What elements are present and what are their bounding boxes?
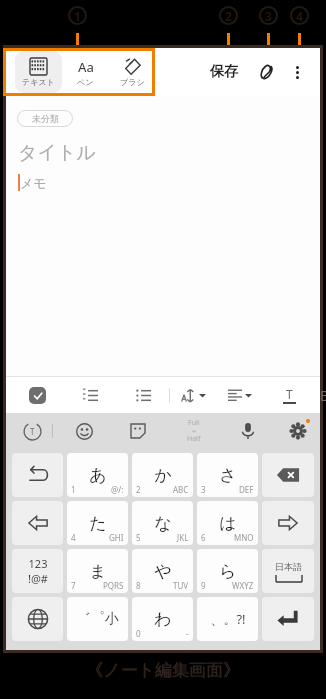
staticText: DEF xyxy=(239,484,254,495)
staticText: 日本語 xyxy=(275,561,302,572)
button[interactable]: 確定 xyxy=(262,597,314,641)
staticText: TUV xyxy=(173,580,189,591)
button[interactable]: その他 xyxy=(284,59,310,85)
staticText: 1 xyxy=(71,484,76,495)
staticText: 9 xyxy=(201,580,206,591)
staticText: ま xyxy=(89,561,107,582)
button[interactable]: ステッカー xyxy=(126,419,150,443)
staticText: T xyxy=(30,426,35,437)
staticText: ら xyxy=(219,561,237,582)
staticText: 保存 xyxy=(210,63,238,81)
button[interactable]: は xyxy=(197,501,258,545)
staticText: や xyxy=(154,561,172,582)
staticText: ABC xyxy=(173,484,189,495)
button[interactable]: 123 !@# xyxy=(12,549,63,593)
staticText: ブラシ xyxy=(120,77,145,87)
staticText: 、。?! xyxy=(210,610,246,628)
button[interactable]: や xyxy=(132,549,193,593)
staticText: T xyxy=(286,386,293,402)
button[interactable]: 元に戻す xyxy=(12,453,63,497)
button[interactable]: 音声入力 xyxy=(236,419,260,443)
button[interactable]: 入力切替 xyxy=(20,419,44,443)
staticText: @/: xyxy=(111,484,124,495)
staticText: GHI xyxy=(109,532,124,543)
button[interactable]: 左 xyxy=(12,501,63,545)
staticText: か xyxy=(154,465,172,486)
staticText: 3 xyxy=(265,8,272,24)
staticText: 2 xyxy=(136,484,141,495)
staticText: ゛゜小 xyxy=(76,610,119,628)
button[interactable]: 削除 xyxy=(262,453,314,497)
staticText: 4 xyxy=(296,8,303,24)
staticText: - xyxy=(186,628,189,639)
button[interactable]: か xyxy=(132,453,193,497)
button[interactable]: チェックリスト xyxy=(24,382,50,408)
staticText: あ xyxy=(89,465,107,486)
staticText: 《ノート編集画面》 xyxy=(86,660,240,681)
staticText: ⇔ xyxy=(192,428,197,434)
button[interactable]: た xyxy=(67,501,128,545)
staticText: さ xyxy=(219,465,237,486)
staticText: 5 xyxy=(136,532,141,543)
staticText: 2 xyxy=(225,8,232,24)
staticText: 123 !@# xyxy=(28,556,48,586)
button[interactable]: ゛゜小 xyxy=(67,597,128,641)
staticText: 7 xyxy=(71,580,76,591)
button[interactable]: 言語切替 xyxy=(12,597,63,641)
button[interactable]: 日本語 スペース xyxy=(262,549,314,593)
staticText: テキスト xyxy=(22,77,55,87)
staticText: は xyxy=(219,513,237,534)
button[interactable]: 添付 xyxy=(252,58,280,86)
staticText: 3 xyxy=(201,484,206,495)
staticText: タイトル xyxy=(18,141,96,165)
button[interactable]: 番号付きリスト xyxy=(77,382,103,408)
button[interactable]: 、。?! xyxy=(197,597,258,641)
staticText: Full xyxy=(188,418,200,428)
staticText: わ xyxy=(154,609,172,630)
button[interactable]: 文字サイズ xyxy=(181,382,206,408)
staticText: JKL xyxy=(177,532,189,543)
staticText: WXYZ xyxy=(232,580,254,591)
staticText: な xyxy=(154,513,172,534)
staticText: MNO xyxy=(234,532,254,543)
staticText: 1 xyxy=(74,8,81,24)
button[interactable]: 保存 xyxy=(204,57,244,87)
button[interactable]: わ xyxy=(132,597,193,641)
button[interactable]: 箇条書き xyxy=(130,382,156,408)
button[interactable]: 未分類 xyxy=(17,110,73,127)
button[interactable]: 文字色 xyxy=(276,382,302,408)
staticText: メモ xyxy=(20,175,47,191)
button[interactable]: あ xyxy=(67,453,128,497)
button[interactable]: ら xyxy=(197,549,258,593)
staticText: 未分類 xyxy=(32,113,59,124)
button[interactable]: 設定 xyxy=(286,419,310,443)
staticText: PQRS xyxy=(103,580,124,591)
button[interactable]: 配置 xyxy=(228,382,252,408)
button[interactable]: さ xyxy=(197,453,258,497)
button[interactable]: 絵文字 xyxy=(72,419,96,443)
staticText: ペン xyxy=(77,77,94,87)
button[interactable]: 右 xyxy=(262,501,314,545)
staticText: た xyxy=(89,513,107,534)
button[interactable]: ブラシ xyxy=(109,51,156,93)
button[interactable]: Full xyxy=(178,418,210,444)
staticText: 6 xyxy=(201,532,206,543)
button[interactable]: テキスト xyxy=(15,51,62,93)
button[interactable]: な xyxy=(132,501,193,545)
staticText: 0 xyxy=(136,628,141,639)
staticText: Half xyxy=(187,434,201,444)
button[interactable]: Aa xyxy=(62,51,109,93)
button[interactable]: ま xyxy=(67,549,128,593)
staticText: Aa xyxy=(78,58,94,75)
staticText: 4 xyxy=(71,532,76,543)
staticText: 8 xyxy=(136,580,141,591)
